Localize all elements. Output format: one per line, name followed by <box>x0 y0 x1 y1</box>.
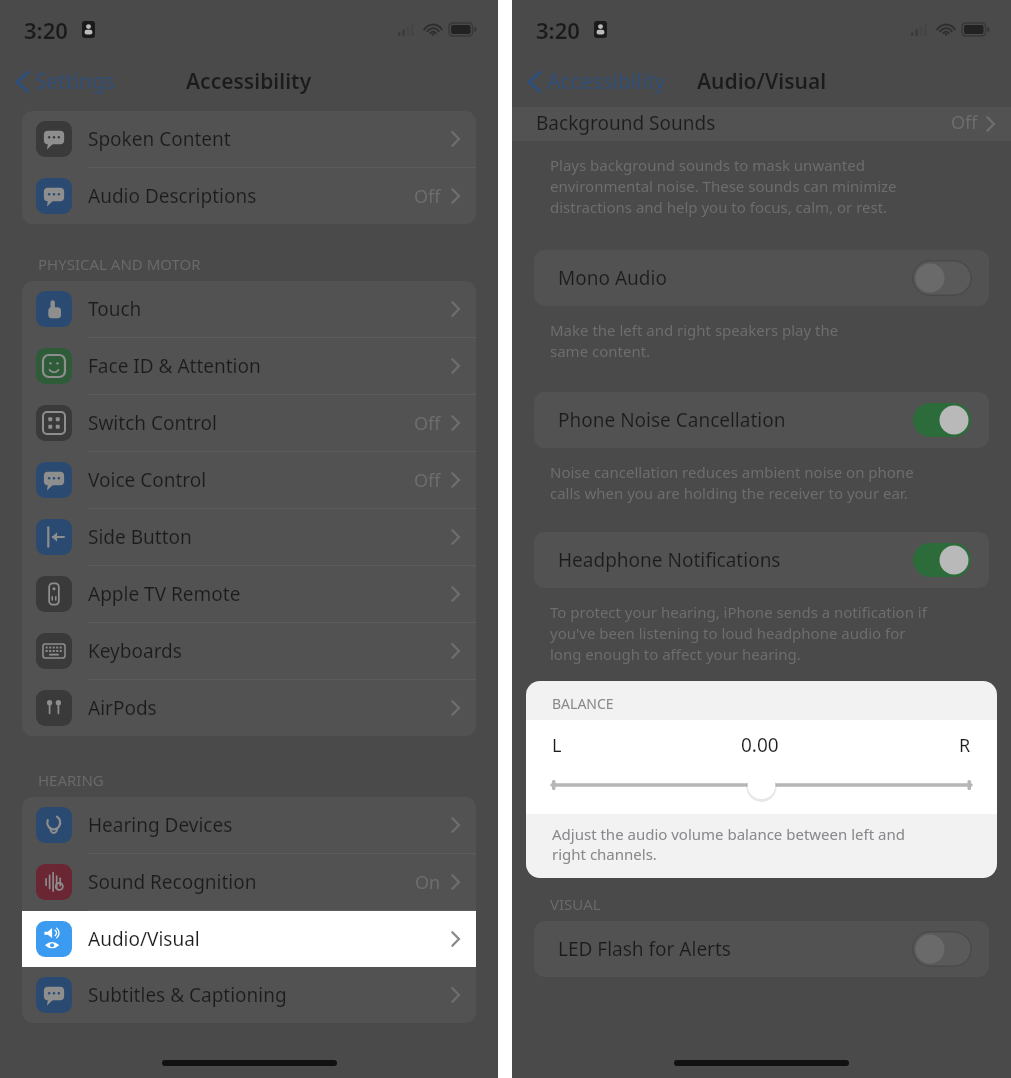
button[interactable]: Touch <box>22 281 476 338</box>
other: Headphone Notifications <box>913 543 971 577</box>
staticText: BALANCE <box>552 694 614 713</box>
staticText: Audio/Visual <box>88 926 451 952</box>
staticText: Accessibility <box>547 67 666 96</box>
staticText: Settings <box>35 67 115 96</box>
button[interactable] <box>552 772 971 798</box>
staticText: Headphone Notifications <box>558 547 913 573</box>
staticText: Subtitles & Captioning <box>88 982 451 1008</box>
staticText: Face ID & Attention <box>88 353 451 379</box>
staticText: Spoken Content <box>88 126 451 152</box>
staticText: Apple TV Remote <box>88 581 451 607</box>
button[interactable]: Accessibility <box>522 61 672 102</box>
button[interactable]: Voice Control <box>22 452 476 509</box>
button[interactable]: Apple TV Remote <box>22 566 476 623</box>
button[interactable]: Face ID & Attention <box>22 338 476 395</box>
button[interactable]: Sound Recognition <box>22 854 476 911</box>
staticText: Off <box>414 411 441 436</box>
button[interactable]: Settings <box>10 61 121 102</box>
button[interactable]: Subtitles & Captioning <box>22 967 476 1023</box>
staticText: Audio Descriptions <box>88 183 414 209</box>
staticText: Voice Control <box>88 467 414 493</box>
staticText: Phone Noise Cancellation <box>558 407 913 433</box>
button[interactable]: Keyboards <box>22 623 476 680</box>
staticText: To protect your hearing, iPhone sends a … <box>550 602 927 665</box>
staticText: Touch <box>88 296 451 322</box>
button[interactable]: LED Flash for Alerts <box>534 921 989 977</box>
staticText: R <box>959 733 971 758</box>
staticText: VISUAL <box>550 894 601 914</box>
button[interactable]: Spoken Content <box>22 111 476 168</box>
staticText: Accessibility <box>186 67 312 96</box>
staticText: On <box>415 870 441 895</box>
staticText: 0.00 <box>741 732 779 758</box>
staticText: Mono Audio <box>558 265 913 291</box>
staticText: Background Sounds <box>536 110 951 136</box>
staticText: Make the left and right speakers play th… <box>550 320 839 362</box>
other: LED Flash for Alerts <box>913 932 971 966</box>
other: Mono Audio <box>913 261 971 295</box>
staticText: Sound Recognition <box>88 869 415 895</box>
staticText: Side Button <box>88 524 451 550</box>
staticText: Off <box>414 184 441 209</box>
button[interactable]: Audio/Visual <box>22 911 476 967</box>
button[interactable]: Audio Descriptions <box>22 168 476 224</box>
staticText: Keyboards <box>88 638 451 664</box>
staticText: AirPods <box>88 695 451 721</box>
staticText: Noise cancellation reduces ambient noise… <box>550 462 914 504</box>
staticText: Adjust the audio volume balance between … <box>552 824 905 864</box>
staticText: L <box>552 733 562 758</box>
staticText: Switch Control <box>88 410 414 436</box>
staticText: Off <box>414 468 441 493</box>
button[interactable]: Side Button <box>22 509 476 566</box>
button[interactable]: Mono Audio <box>534 250 989 306</box>
staticText: HEARING <box>38 770 104 790</box>
button[interactable]: Hearing Devices <box>22 797 476 854</box>
staticText: 3:20 <box>24 15 68 45</box>
other: Phone Noise Cancellation <box>913 403 971 437</box>
staticText: PHYSICAL AND MOTOR <box>38 254 201 274</box>
button[interactable]: Headphone Notifications <box>534 532 989 588</box>
staticText: LED Flash for Alerts <box>558 936 913 962</box>
button[interactable]: AirPods <box>22 680 476 736</box>
button[interactable]: Phone Noise Cancellation <box>534 392 989 448</box>
staticText: Audio/Visual <box>697 67 827 96</box>
button[interactable]: L <box>526 720 997 814</box>
staticText: Plays background sounds to mask unwanted… <box>550 155 897 218</box>
staticText: 3:20 <box>536 15 580 45</box>
button[interactable]: Background Sounds <box>512 107 1011 141</box>
button[interactable]: Switch Control <box>22 395 476 452</box>
staticText: Off <box>951 110 978 135</box>
staticText: Hearing Devices <box>88 812 451 838</box>
